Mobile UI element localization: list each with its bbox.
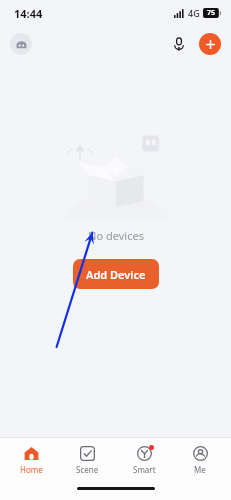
staticText: Smart xyxy=(133,464,156,475)
button[interactable]: Assistant xyxy=(10,33,32,55)
button[interactable]: Add xyxy=(199,33,221,55)
staticText: No devices xyxy=(88,228,144,243)
staticText: Me xyxy=(194,464,206,475)
staticText: 14:44 xyxy=(14,6,43,21)
button[interactable]: Voice xyxy=(167,32,191,56)
staticText: Scene xyxy=(76,464,99,475)
staticText: 4G xyxy=(188,7,200,19)
button[interactable]: Add Device xyxy=(73,259,159,289)
staticText: Home xyxy=(20,464,43,475)
button[interactable]: Scene xyxy=(61,438,113,482)
button[interactable]: Me xyxy=(174,438,226,482)
staticText: Add Device xyxy=(86,267,146,282)
button[interactable]: Home xyxy=(5,438,57,482)
staticText: 75 xyxy=(207,8,216,18)
button[interactable]: Smart xyxy=(118,438,170,482)
